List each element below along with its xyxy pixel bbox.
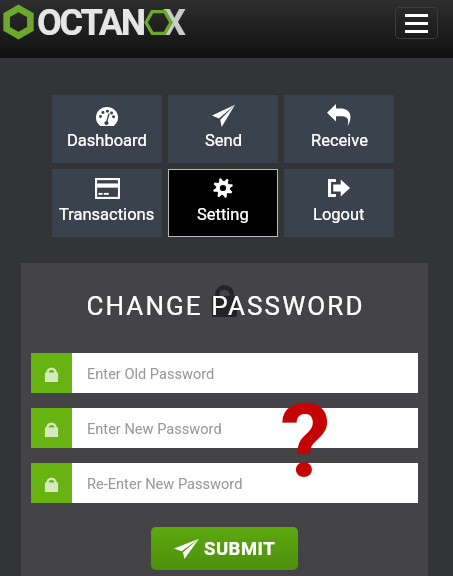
staticText: CHANGE PASSWORD: [86, 291, 365, 321]
button[interactable]: Menu: [395, 7, 438, 39]
button[interactable]: Logout: [284, 169, 394, 237]
staticText: Re-Enter New Password: [87, 475, 243, 492]
staticText: Transactions: [59, 205, 155, 224]
staticText: Enter New Password: [87, 420, 222, 437]
staticText: ?: [280, 381, 331, 501]
button[interactable]: Enter New Password: [31, 408, 418, 448]
staticText: Send: [205, 131, 242, 150]
staticText: Enter Old Password: [87, 365, 215, 382]
button[interactable]: SUBMIT: [151, 527, 298, 570]
button[interactable]: Send: [168, 95, 278, 163]
staticText: Receive: [311, 131, 368, 150]
staticText: OCTAN: [37, 2, 144, 44]
button[interactable]: Setting: [168, 169, 278, 237]
button[interactable]: OCTAN: [0, 0, 190, 44]
button[interactable]: Transactions: [52, 169, 162, 237]
staticText: Setting: [197, 205, 249, 224]
staticText: X: [163, 2, 186, 44]
staticText: Dashboard: [67, 131, 147, 150]
staticText: SUBMIT: [204, 538, 276, 560]
button[interactable]: Re-Enter New Password: [31, 463, 418, 503]
staticText: Logout: [313, 205, 365, 224]
button[interactable]: Receive: [284, 95, 394, 163]
button[interactable]: Enter Old Password: [31, 353, 418, 393]
button[interactable]: Dashboard: [52, 95, 162, 163]
